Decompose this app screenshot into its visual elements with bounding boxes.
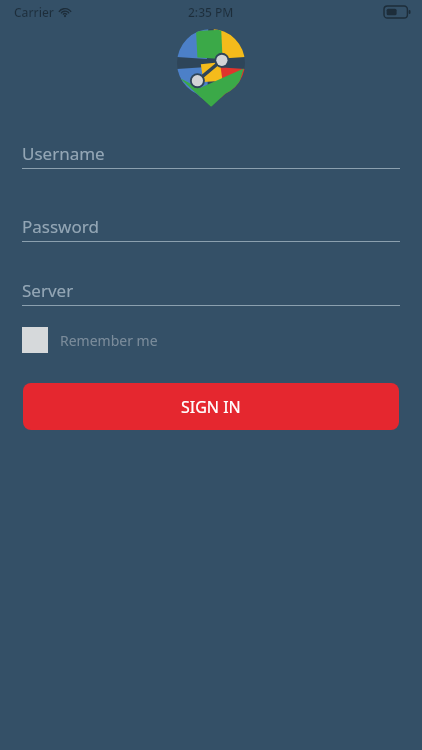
other: App logo bbox=[177, 29, 245, 107]
staticText: Server bbox=[22, 279, 74, 302]
staticText: Remember me bbox=[60, 331, 158, 350]
button[interactable]: Server bbox=[22, 279, 400, 306]
button[interactable]: Username bbox=[22, 142, 400, 169]
staticText: SIGN IN bbox=[181, 396, 241, 418]
button[interactable]: Password bbox=[22, 215, 400, 242]
staticText: Carrier bbox=[14, 4, 54, 20]
staticText: Username bbox=[22, 142, 105, 165]
staticText: Password bbox=[22, 215, 99, 238]
button[interactable]: Remember me bbox=[22, 327, 158, 353]
button[interactable]: SIGN IN bbox=[23, 383, 399, 430]
staticText: 2:35 PM bbox=[188, 4, 234, 20]
